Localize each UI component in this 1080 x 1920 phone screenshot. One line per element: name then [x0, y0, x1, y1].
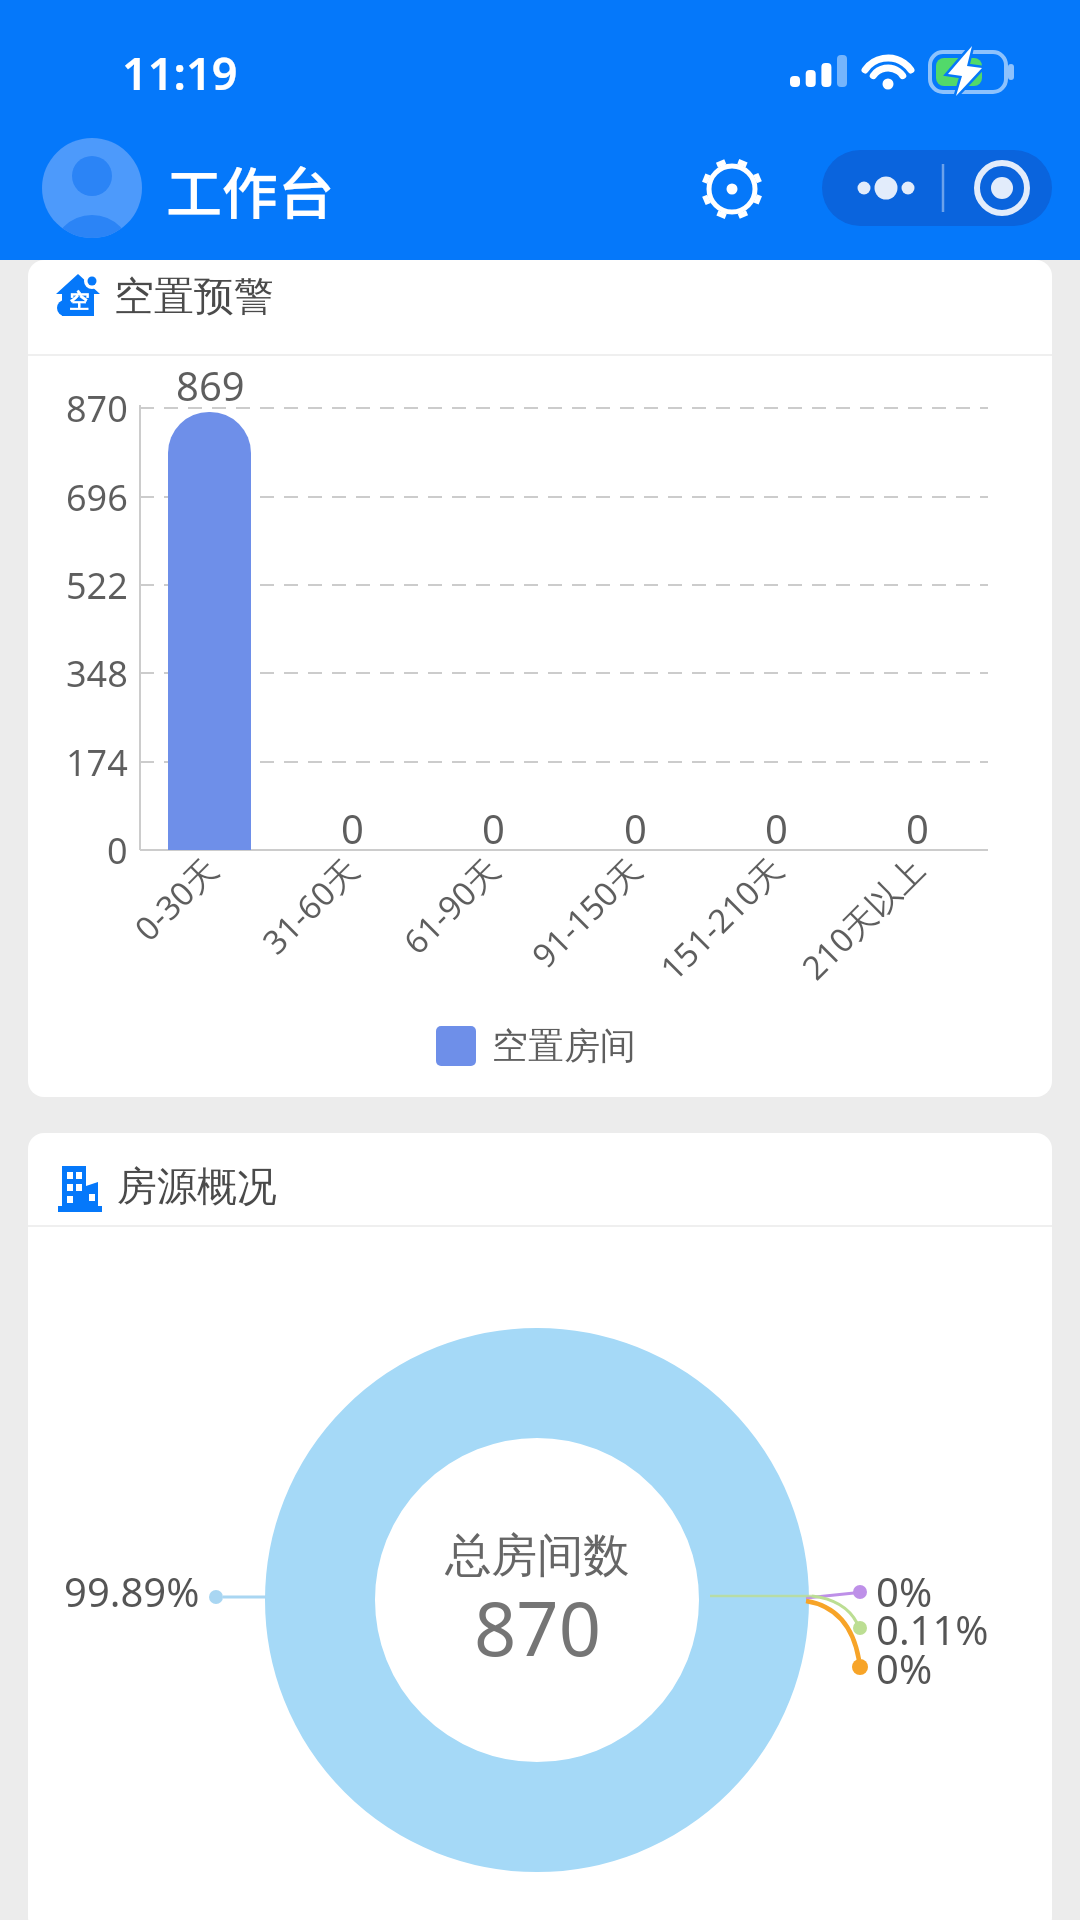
staticText: 0: [765, 801, 788, 855]
staticText: 0: [341, 801, 364, 855]
staticText: 696: [66, 473, 128, 522]
staticText: 870: [474, 1577, 601, 1678]
staticText: 174: [66, 738, 128, 787]
staticText: 房源概况: [117, 1161, 277, 1211]
staticText: 99.89%: [64, 1564, 200, 1618]
staticText: 0: [906, 801, 929, 855]
staticText: 348: [66, 649, 128, 698]
staticText: 0%: [876, 1564, 933, 1618]
staticText: 31-60天: [252, 847, 367, 962]
staticText: 0: [482, 801, 505, 855]
staticText: 空置房间: [492, 1023, 636, 1068]
staticText: 0: [624, 801, 647, 855]
staticText: 空置预警: [114, 271, 274, 321]
staticText: 0-30天: [125, 847, 226, 948]
staticText: 151-210天: [650, 847, 791, 988]
staticText: 869: [176, 358, 245, 412]
staticText: 11:19: [122, 42, 238, 103]
staticText: 61-90天: [393, 847, 508, 962]
staticText: 总房间数: [445, 1527, 629, 1585]
staticText: 工作台: [166, 149, 334, 230]
staticText: 522: [66, 561, 128, 610]
staticText: 空: [69, 289, 89, 314]
staticText: 0.11%: [876, 1602, 989, 1656]
staticText: 0: [107, 826, 128, 875]
staticText: 91-150天: [522, 847, 650, 975]
button[interactable]: [937, 150, 1052, 226]
staticText: 0%: [876, 1641, 933, 1695]
staticText: 870: [66, 384, 128, 433]
button[interactable]: [822, 150, 937, 226]
button[interactable]: [700, 157, 764, 221]
button[interactable]: [42, 138, 142, 238]
staticText: 210天以上: [792, 847, 932, 987]
